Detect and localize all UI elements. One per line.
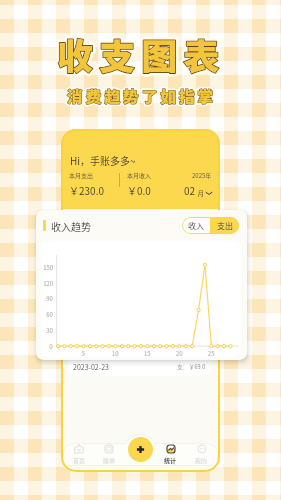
staticText: 月	[196, 188, 204, 197]
staticText: 我的	[195, 456, 208, 465]
staticText: 支出	[217, 220, 233, 232]
button[interactable]: Add new record	[128, 437, 153, 462]
staticText: ￥0.0	[127, 183, 151, 197]
button[interactable]: 收入	[182, 217, 210, 234]
staticText: 账单	[103, 456, 116, 465]
button[interactable]: 2023-02-23	[68, 358, 211, 376]
staticText: 收入趋势	[51, 219, 91, 233]
button[interactable]: 支出	[210, 217, 239, 234]
button[interactable]: 账单	[94, 444, 124, 465]
button[interactable]: 首页	[64, 444, 94, 465]
staticText: 首页	[73, 456, 86, 465]
staticText: 2025年	[192, 171, 212, 180]
button[interactable]: 统计	[155, 444, 186, 465]
staticText: 本月收入	[127, 171, 152, 180]
staticText: 统计	[164, 456, 177, 465]
button[interactable]: 我的	[186, 444, 217, 465]
staticText: ￥230.0	[69, 183, 104, 197]
staticText: Hi，手账多多~	[70, 153, 136, 167]
staticText: 收入	[188, 220, 204, 232]
staticText: 2023-02-23	[73, 362, 109, 372]
staticText: ￥69.0	[189, 363, 206, 371]
staticText: 02	[184, 183, 196, 197]
staticText: 支：	[177, 363, 189, 371]
staticText: 本月支出	[69, 171, 94, 180]
